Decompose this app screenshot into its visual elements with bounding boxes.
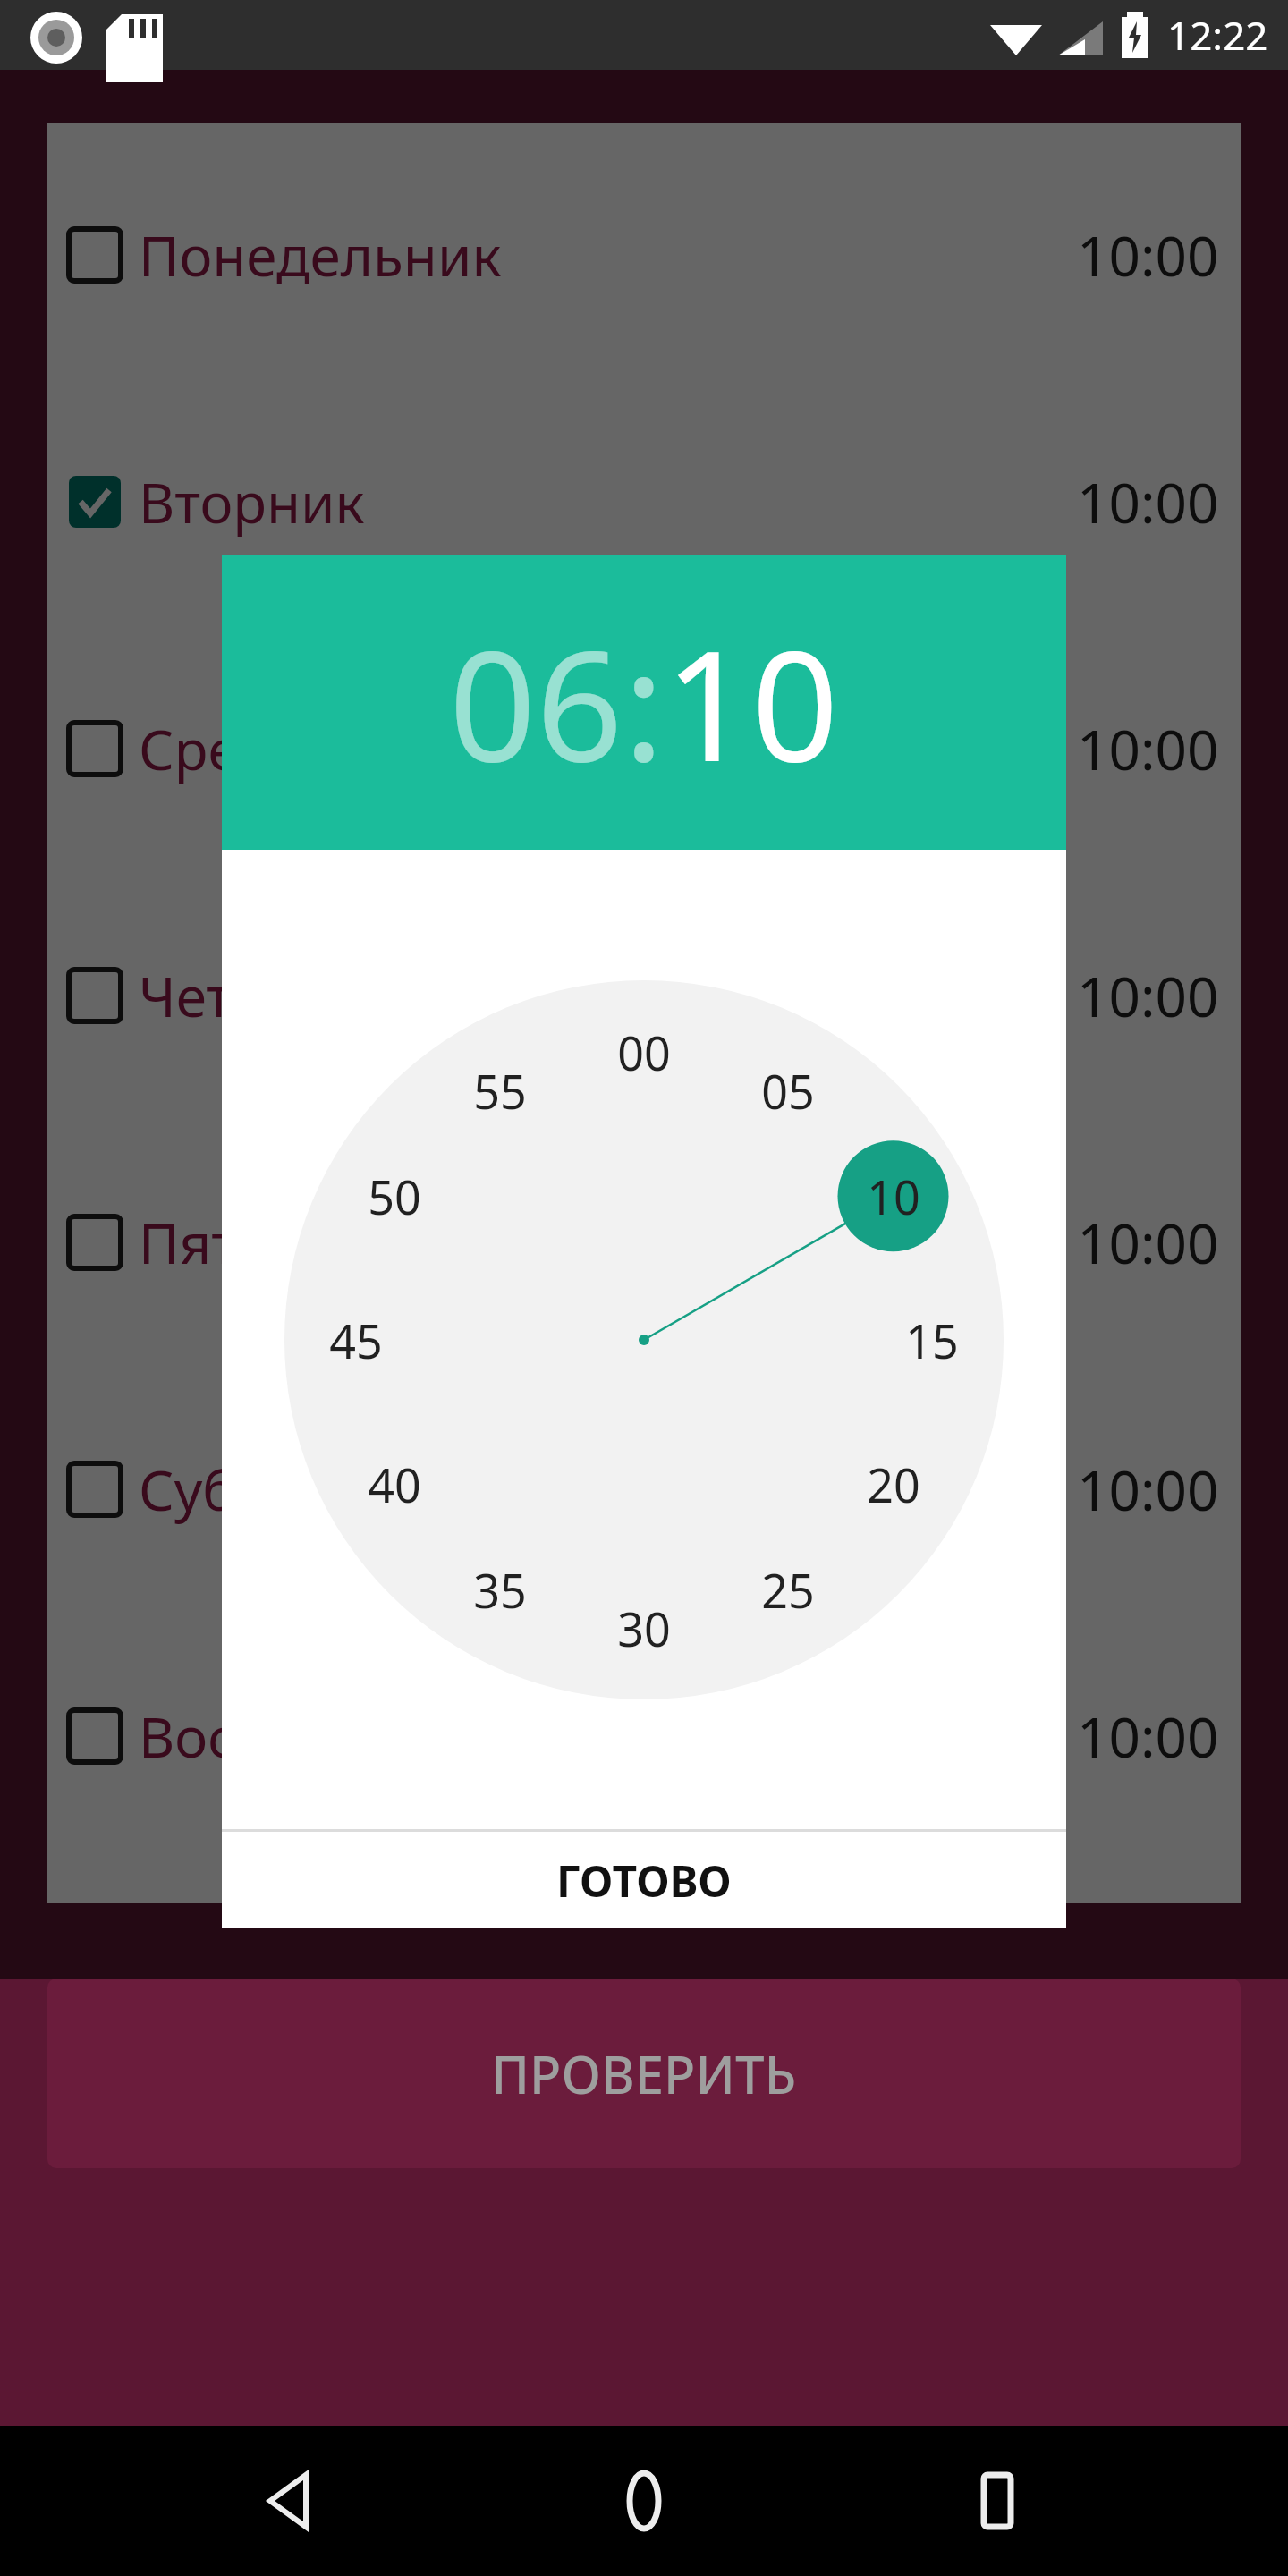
staticText: 10:00 <box>1077 958 1219 1033</box>
button[interactable]: Checked <box>69 476 121 528</box>
staticText: Среда <box>139 711 303 786</box>
button[interactable]: 20 <box>838 1428 949 1539</box>
staticText: Четверг <box>139 958 352 1033</box>
button[interactable]: Back <box>228 2438 353 2563</box>
staticText: 05 <box>761 1059 815 1123</box>
staticText: Пятница <box>139 1205 371 1280</box>
staticText: 10:00 <box>1077 711 1219 786</box>
staticText: 10 <box>867 1165 920 1228</box>
staticText: 10:00 <box>1077 464 1219 539</box>
staticText: Воскресенье <box>139 1699 481 1774</box>
button[interactable]: Checked <box>47 378 1241 625</box>
staticText: 12:22 <box>1167 8 1268 62</box>
button[interactable]: 00 <box>589 996 699 1107</box>
button[interactable]: 06 <box>449 598 623 806</box>
button[interactable]: 05 <box>733 1035 843 1146</box>
staticText: : <box>623 598 665 806</box>
staticText: 10:00 <box>1077 1452 1219 1527</box>
button[interactable]: 45 <box>301 1284 411 1395</box>
staticText: 35 <box>473 1558 527 1622</box>
staticText: 55 <box>473 1059 527 1123</box>
staticText: Суббота <box>139 1452 358 1527</box>
staticText: 10:00 <box>1077 1205 1219 1280</box>
button[interactable]: Unchecked <box>47 131 1241 378</box>
button[interactable]: Unchecked <box>47 1613 1241 1860</box>
button[interactable]: 10 <box>838 1140 949 1251</box>
button[interactable]: Unchecked <box>69 229 121 281</box>
staticText: 15 <box>905 1309 959 1372</box>
staticText: 40 <box>368 1453 421 1516</box>
button[interactable]: 40 <box>339 1428 450 1539</box>
staticText: 10:00 <box>1077 217 1219 292</box>
staticText: Понедельник <box>139 217 502 292</box>
button[interactable]: Unchecked <box>47 1119 1241 1366</box>
button[interactable]: ГОТОВО <box>222 1832 1066 1928</box>
staticText: 30 <box>617 1597 671 1660</box>
staticText: ГОТОВО <box>556 1851 732 1910</box>
button[interactable]: Unchecked <box>69 1216 121 1268</box>
staticText: ПРОВЕРИТЬ <box>491 2038 797 2109</box>
button[interactable]: Unchecked <box>69 1463 121 1515</box>
button[interactable]: 15 <box>877 1284 987 1395</box>
button[interactable]: Unchecked <box>47 1366 1241 1613</box>
staticText: 00 <box>617 1021 671 1084</box>
button[interactable]: Unchecked <box>69 970 121 1021</box>
staticText: 50 <box>368 1165 421 1228</box>
button[interactable]: Recents <box>935 2438 1060 2563</box>
button[interactable]: 55 <box>445 1035 555 1146</box>
button[interactable]: 30 <box>589 1572 699 1683</box>
button[interactable]: 50 <box>339 1140 450 1251</box>
staticText: 20 <box>867 1453 920 1516</box>
button[interactable]: 35 <box>445 1534 555 1645</box>
button[interactable]: Unchecked <box>47 625 1241 872</box>
staticText: 45 <box>329 1309 383 1372</box>
staticText: 10:00 <box>1077 1699 1219 1774</box>
button[interactable]: Unchecked <box>47 872 1241 1119</box>
button[interactable]: 10 <box>665 598 839 806</box>
button[interactable]: ПРОВЕРИТЬ <box>47 1979 1241 2168</box>
button[interactable]: Home <box>581 2438 707 2563</box>
staticText: Вторник <box>139 464 365 539</box>
button[interactable]: 25 <box>733 1534 843 1645</box>
staticText: 25 <box>761 1558 815 1622</box>
button[interactable]: Unchecked <box>69 1710 121 1762</box>
button[interactable]: Unchecked <box>69 723 121 775</box>
